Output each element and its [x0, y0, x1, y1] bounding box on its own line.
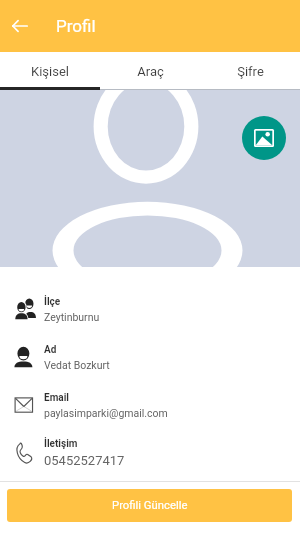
- button[interactable]: İletişim: [0, 429, 300, 477]
- staticText: Email: [44, 392, 69, 404]
- staticText: paylasimparki@gmail.com: [44, 407, 168, 419]
- button[interactable]: Email: [0, 381, 300, 429]
- button[interactable]: Profili Güncelle: [7, 489, 292, 522]
- button[interactable]: İlçe: [0, 285, 300, 333]
- button[interactable]: Kişisel: [0, 52, 100, 90]
- button[interactable]: Change profile photo: [242, 116, 286, 160]
- button[interactable]: Araç: [100, 52, 200, 90]
- button[interactable]: Ad: [0, 333, 300, 381]
- staticText: Kişisel: [31, 64, 69, 79]
- staticText: Profil: [56, 16, 96, 36]
- button[interactable]: Şifre: [200, 52, 300, 90]
- button[interactable]: Back: [8, 14, 32, 38]
- staticText: 05452527417: [44, 453, 125, 468]
- staticText: Şifre: [237, 64, 264, 79]
- staticText: Zeytinburnu: [44, 311, 100, 323]
- staticText: Araç: [137, 64, 164, 79]
- staticText: İlçe: [44, 296, 61, 308]
- staticText: İletişim: [44, 438, 78, 450]
- staticText: Vedat Bozkurt: [44, 359, 110, 371]
- staticText: Ad: [44, 344, 57, 356]
- staticText: Profili Güncelle: [112, 499, 188, 512]
